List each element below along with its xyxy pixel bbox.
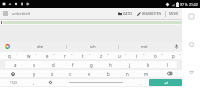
- staticText: 97 %: [180, 2, 188, 7]
- button[interactable]: i: [128, 52, 146, 59]
- button[interactable]: DATEI: [117, 10, 133, 18]
- button[interactable]: Google: [0, 42, 14, 51]
- button[interactable]: t: [74, 52, 92, 59]
- button[interactable]: Startbildschirm: [185, 38, 197, 50]
- button[interactable]: MEHR: [168, 10, 180, 18]
- staticText: h: [109, 62, 112, 68]
- staticText: f: [72, 62, 74, 68]
- staticText: 5: [89, 52, 91, 55]
- staticText: l: [167, 62, 169, 68]
- staticText: p: [172, 53, 175, 59]
- staticText: 0: [179, 52, 181, 55]
- button[interactable]: j: [120, 61, 139, 68]
- staticText: r: [64, 53, 66, 59]
- button[interactable]: o: [146, 52, 164, 59]
- staticText: ich: [90, 44, 96, 50]
- button[interactable]: ich: [67, 42, 118, 51]
- staticText: die: [37, 44, 44, 50]
- staticText: s: [33, 62, 36, 68]
- staticText: d: [52, 62, 55, 68]
- button[interactable]: u: [110, 52, 128, 59]
- button[interactable]: Spracheingabe: [170, 42, 182, 51]
- staticText: 21:22: [189, 2, 198, 7]
- staticText: ,: [33, 80, 35, 86]
- staticText: a: [14, 62, 17, 68]
- staticText: c: [69, 71, 72, 77]
- button[interactable]: e: [38, 52, 56, 59]
- button[interactable]: y: [25, 70, 43, 77]
- button[interactable]: d: [44, 61, 63, 68]
- staticText: .: [140, 80, 142, 86]
- staticText: g: [90, 62, 93, 68]
- button[interactable]: a: [5, 61, 25, 68]
- staticText: t: [82, 53, 84, 59]
- staticText: q: [8, 53, 11, 59]
- staticText: x: [51, 71, 54, 77]
- button[interactable]: ,: [26, 79, 42, 86]
- button[interactable]: Löschen: [156, 70, 182, 77]
- staticText: b: [107, 71, 110, 77]
- button[interactable]: z: [92, 52, 110, 59]
- button[interactable]: Emoji: [42, 79, 58, 86]
- button[interactable]: ?123: [0, 79, 26, 86]
- staticText: unbetitelt: [12, 11, 31, 16]
- staticText: k: [147, 62, 150, 68]
- button[interactable]: c: [61, 70, 80, 77]
- staticText: ?123: [10, 81, 17, 85]
- button[interactable]: .: [133, 79, 149, 86]
- button[interactable]: v: [80, 70, 99, 77]
- staticText: 7: [125, 52, 127, 55]
- staticText: v: [88, 71, 91, 77]
- button[interactable]: BEARBEITEN: [136, 10, 162, 18]
- button[interactable]: l: [158, 61, 177, 68]
- staticText: DATEI: [123, 12, 132, 16]
- button[interactable]: x: [43, 70, 61, 77]
- staticText: 4: [71, 52, 73, 55]
- staticText: mit: [141, 44, 148, 50]
- button[interactable]: m: [137, 70, 156, 77]
- staticText: u: [118, 53, 121, 59]
- button[interactable]: Leertaste: [58, 79, 133, 86]
- staticText: 9: [161, 52, 163, 55]
- button[interactable]: h: [101, 61, 120, 68]
- staticText: o: [154, 53, 157, 59]
- staticText: j: [129, 62, 131, 68]
- button[interactable]: w: [19, 52, 38, 59]
- staticText: 1: [16, 52, 18, 55]
- button[interactable]: k: [139, 61, 158, 68]
- staticText: e: [46, 53, 49, 59]
- button[interactable]: mit: [119, 42, 170, 51]
- staticText: i: [136, 53, 138, 59]
- button[interactable]: n: [118, 70, 137, 77]
- staticText: 8: [143, 52, 145, 55]
- button[interactable]: p: [164, 52, 182, 59]
- button[interactable]: s: [25, 61, 44, 68]
- button[interactable]: r: [56, 52, 74, 59]
- button[interactable]: q: [0, 52, 19, 59]
- staticText: 3: [53, 52, 55, 55]
- staticText: y: [33, 71, 36, 77]
- button[interactable]: Übersicht: [185, 10, 197, 22]
- button[interactable]: die: [14, 42, 66, 51]
- staticText: BEARBEITEN: [142, 12, 161, 16]
- staticText: MEHR: [169, 12, 179, 16]
- staticText: m: [144, 71, 149, 77]
- button[interactable]: f: [63, 61, 82, 68]
- button[interactable]: g: [82, 61, 101, 68]
- staticText: z: [100, 53, 103, 59]
- button[interactable]: Umschalt: [0, 70, 25, 77]
- button[interactable]: Zurück: [185, 66, 197, 78]
- staticText: w: [27, 53, 31, 59]
- button[interactable]: b: [99, 70, 118, 77]
- staticText: 6: [107, 52, 109, 55]
- staticText: n: [126, 71, 129, 77]
- staticText: 2: [35, 52, 37, 55]
- button[interactable]: Eingabe: [149, 79, 182, 86]
